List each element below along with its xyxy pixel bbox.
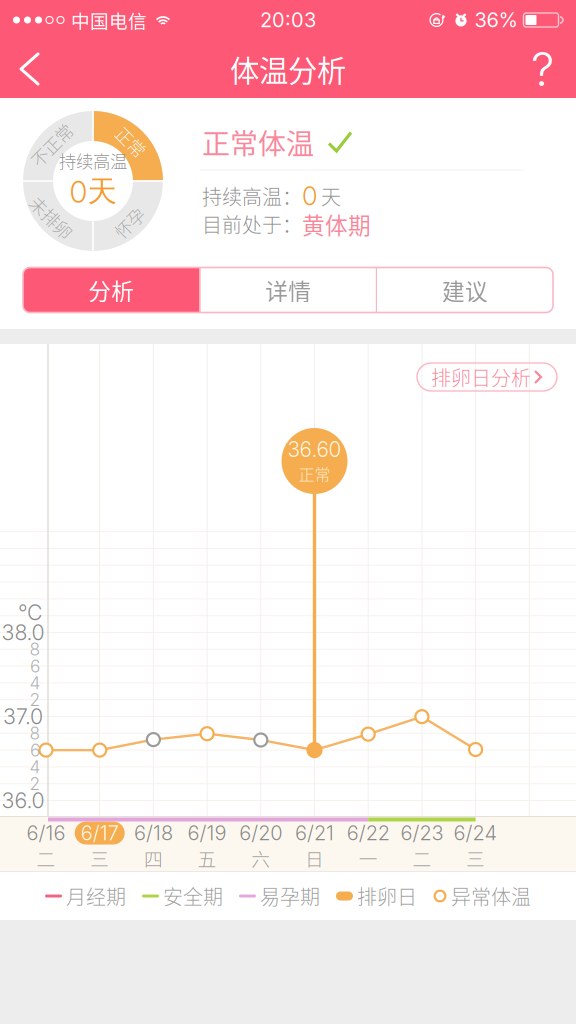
staticText: 五 (198, 844, 217, 871)
staticText: 20:03 (260, 8, 316, 32)
staticText: 未排卵 (26, 204, 77, 230)
button[interactable]: 分析 (23, 267, 199, 312)
staticText: 6/17 (81, 821, 119, 845)
staticText: 6/22 (347, 821, 390, 845)
staticText: 排卵日分析 (431, 362, 531, 391)
staticText: 6/16 (26, 821, 65, 845)
staticText: 三 (90, 844, 109, 871)
staticText: 月经期 (62, 881, 126, 910)
staticText: 0 (302, 181, 317, 211)
staticText: 黄体期 (302, 208, 371, 240)
staticText: °C (18, 600, 42, 625)
staticText: 正常 (114, 129, 148, 154)
staticText: 建议 (442, 274, 488, 306)
staticText: 排卵日 (353, 881, 417, 910)
staticText: 安全期 (159, 881, 223, 910)
staticText: 38.0 (1, 620, 44, 645)
button[interactable]: 详情 (201, 267, 376, 312)
staticText: 36.0 (1, 788, 44, 813)
staticText: 36.60 (287, 437, 341, 462)
staticText: 易孕期 (256, 881, 320, 910)
staticText: 持续高温： (202, 181, 302, 210)
staticText: 详情 (265, 274, 311, 306)
staticText: 2 (29, 689, 40, 710)
staticText: 不正常 (26, 132, 77, 157)
staticText: 6/19 (188, 821, 227, 845)
staticText: 37.0 (3, 704, 43, 729)
staticText: 二 (36, 844, 55, 871)
staticText: 36% (474, 8, 517, 32)
staticText: 6 (30, 656, 40, 677)
staticText: 6/24 (454, 821, 498, 845)
button[interactable]: 排卵日分析 (417, 363, 557, 391)
button[interactable]: Help (511, 40, 576, 98)
staticText: 6/23 (400, 821, 443, 845)
staticText: 持续高温 (59, 148, 127, 173)
staticText: ? (531, 41, 554, 97)
staticText: 8 (29, 639, 40, 660)
staticText: 日 (305, 844, 324, 871)
staticText: 分析 (88, 274, 134, 306)
staticText: 8 (29, 723, 40, 744)
staticText: 一 (359, 844, 378, 871)
button[interactable]: 建议 (377, 267, 553, 312)
staticText: 4 (29, 756, 40, 777)
staticText: 6/21 (295, 821, 334, 845)
staticText: 正常 (298, 462, 330, 485)
staticText: 6/20 (239, 821, 282, 845)
staticText: 正常体温 (202, 122, 314, 162)
staticText: 六 (251, 844, 270, 871)
staticText: 中国电信 (71, 6, 147, 33)
staticText: 四 (144, 844, 163, 871)
button[interactable]: Back (0, 40, 56, 98)
staticText: 三 (466, 844, 485, 871)
staticText: 2 (29, 773, 40, 794)
staticText: 6/18 (134, 821, 173, 845)
staticText: 天 (317, 181, 341, 210)
staticText: 体温分析 (230, 48, 346, 90)
staticText: 怀孕 (112, 210, 146, 235)
staticText: 6 (30, 740, 40, 761)
staticText: 异常体温 (447, 881, 531, 910)
staticText: 目前处于： (202, 209, 302, 238)
staticText: 二 (412, 844, 431, 871)
staticText: 0天 (69, 173, 116, 210)
staticText: 4 (29, 672, 40, 693)
